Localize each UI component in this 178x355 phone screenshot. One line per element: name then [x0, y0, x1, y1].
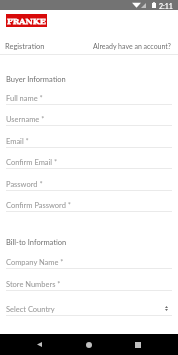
- button[interactable]: Company Name *: [0, 256, 178, 269]
- button[interactable]: Store Numbers *: [0, 278, 178, 291]
- button[interactable]: Confirm Password *: [0, 199, 178, 212]
- staticText: 2:11: [159, 2, 173, 10]
- staticText: Bill-to Information: [6, 238, 67, 247]
- button[interactable]: Back: [22, 334, 56, 355]
- button[interactable]: Select Country: [0, 303, 178, 316]
- staticText: Confirm Email *: [6, 158, 58, 167]
- button[interactable]: Already have an account?: [84, 38, 178, 54]
- button[interactable]: Confirm Email *: [0, 156, 178, 169]
- staticText: Email *: [6, 137, 29, 146]
- staticText: Password *: [6, 180, 43, 189]
- staticText: Already have an account?: [93, 42, 172, 50]
- staticText: Buyer Information: [6, 75, 66, 84]
- button[interactable]: Home: [72, 334, 106, 355]
- staticText: Select Country: [6, 305, 55, 314]
- staticText: Full name *: [6, 94, 43, 103]
- button[interactable]: Username *: [0, 113, 178, 126]
- staticText: FRANKE: [7, 16, 46, 25]
- staticText: Confirm Password *: [6, 201, 72, 210]
- staticText: Company Name *: [6, 258, 64, 267]
- staticText: Username *: [6, 115, 45, 124]
- staticText: Store Numbers *: [6, 280, 61, 289]
- staticText: Registration: [5, 42, 45, 51]
- button[interactable]: Registration: [0, 38, 84, 54]
- button[interactable]: Full name *: [0, 92, 178, 105]
- button[interactable]: Recent apps: [121, 334, 155, 355]
- button[interactable]: Email *: [0, 135, 178, 148]
- button[interactable]: Password *: [0, 178, 178, 191]
- button[interactable]: Franke: [6, 14, 47, 27]
